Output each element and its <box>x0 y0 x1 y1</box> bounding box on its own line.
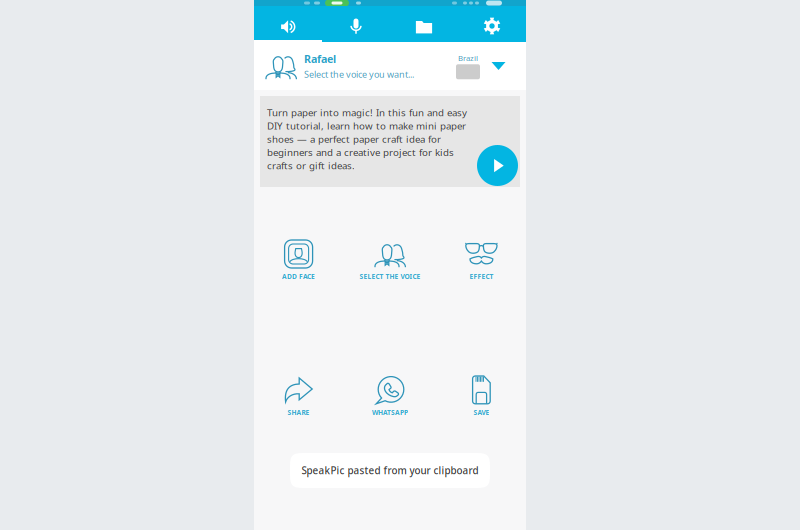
button[interactable]: WHATSAPP <box>344 368 436 424</box>
button[interactable]: EFFECT <box>436 232 527 288</box>
button[interactable]: SELECT THE VOICE <box>344 232 436 288</box>
staticText: WHATSAPP <box>372 408 408 417</box>
button[interactable]: Rafael <box>254 42 526 90</box>
staticText: ADD FACE <box>282 272 315 281</box>
button[interactable]: Play <box>477 145 518 186</box>
staticText: SpeakPic pasted from your clipboard <box>301 464 478 477</box>
staticText: SHARE <box>288 408 310 417</box>
staticText: Brazil <box>458 53 478 63</box>
button[interactable]: SAVE <box>436 368 527 424</box>
staticText: Select the voice you want... <box>304 68 414 80</box>
staticText: EFFECT <box>469 272 493 281</box>
button[interactable]: Settings <box>458 6 526 42</box>
button[interactable]: Record <box>322 6 390 42</box>
button[interactable]: Files <box>390 6 458 42</box>
staticText: SELECT THE VOICE <box>359 272 420 281</box>
staticText: Turn paper into magic! In this fun and e… <box>267 106 467 172</box>
staticText: SAVE <box>473 408 489 417</box>
button[interactable]: SHARE <box>253 368 344 424</box>
button[interactable]: Speak <box>254 6 322 42</box>
staticText: Rafael <box>304 52 336 66</box>
button[interactable]: ADD FACE <box>253 232 344 288</box>
